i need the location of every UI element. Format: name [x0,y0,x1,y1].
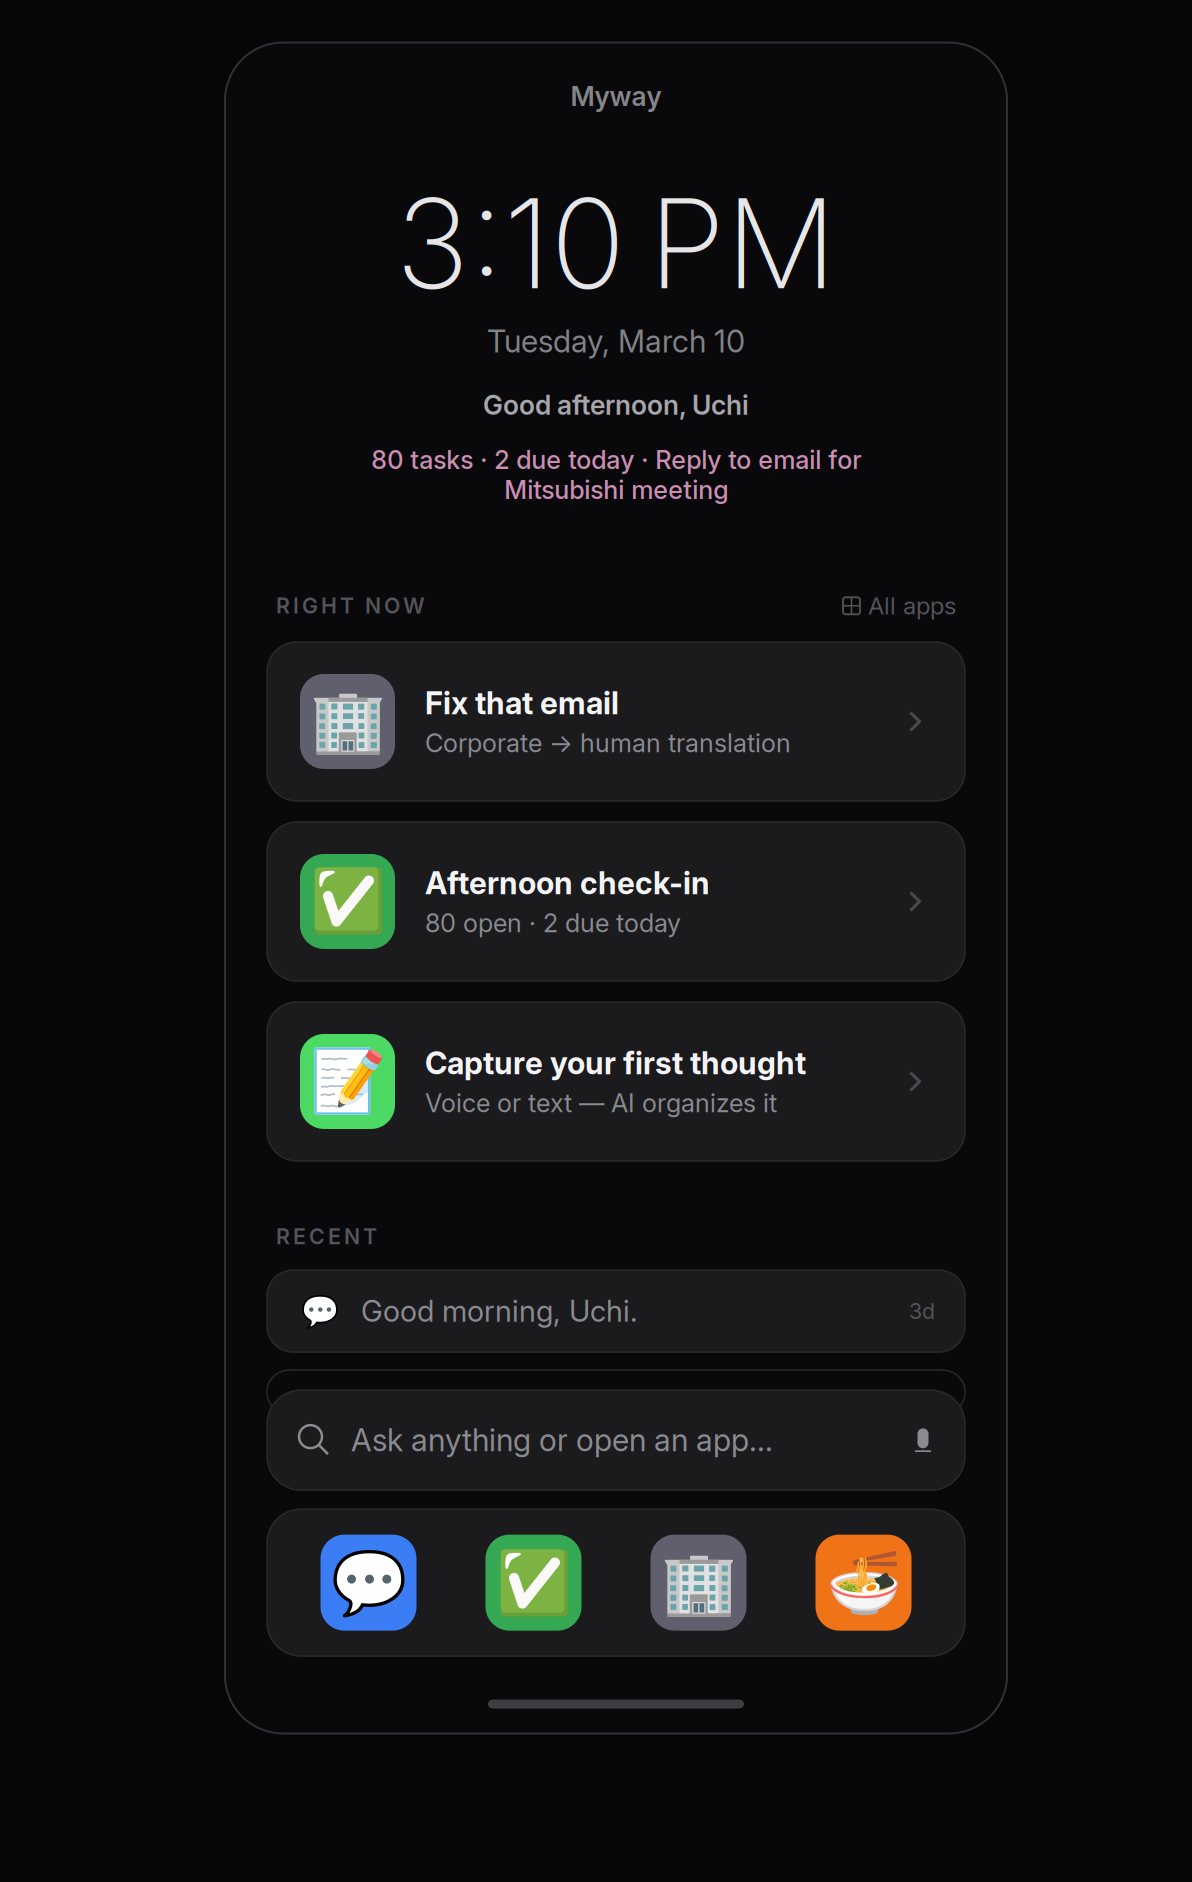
button[interactable]: Tasks [485,1535,581,1631]
staticText: 3d [909,1299,935,1324]
staticText: Corporate → human translation [425,728,791,758]
staticText: Fix that email [425,685,619,721]
staticText: 💬 [301,1294,339,1329]
staticText: 📝 [309,1046,385,1116]
staticText: Voice or text — AI organizes it [425,1088,777,1118]
button[interactable]: Food [815,1535,911,1631]
staticText: 80 open · 2 due today [425,908,681,938]
button[interactable]: 🏢 [267,642,965,801]
staticText: 💬 [330,1548,406,1618]
staticText: Afternoon check-in [425,865,710,901]
staticText: Good morning, Uchi. [361,1294,638,1328]
staticText: 🏢 [660,1548,736,1618]
staticText: R E C E N T [276,1224,377,1249]
button[interactable]: Ask anything or open an app... [267,1390,965,1490]
button[interactable]: Messages [320,1535,416,1631]
staticText: Ask anything or open an app... [351,1422,773,1458]
staticText: 3:10 PM [395,170,836,316]
button[interactable]: Work [650,1535,746,1631]
button[interactable]: 📝 [267,1002,965,1161]
button[interactable]: ✅ [267,822,965,981]
staticText: 🏢 [309,686,385,756]
staticText: Good afternoon, Uchi [483,389,749,421]
staticText: ✅ [309,866,385,936]
staticText: All apps [868,592,956,620]
staticText: Capture your first thought [425,1045,806,1081]
staticText: 🍜 [825,1548,901,1618]
staticText: 80 tasks · 2 due today · Reply to email … [371,445,861,505]
staticText: ✅ [495,1548,571,1618]
staticText: R I G H T N O W [276,593,425,618]
staticText: Myway [570,80,661,112]
button[interactable]: All apps [843,592,956,620]
button[interactable]: 💬 [267,1270,965,1352]
staticText: Tuesday, March 10 [487,323,745,359]
